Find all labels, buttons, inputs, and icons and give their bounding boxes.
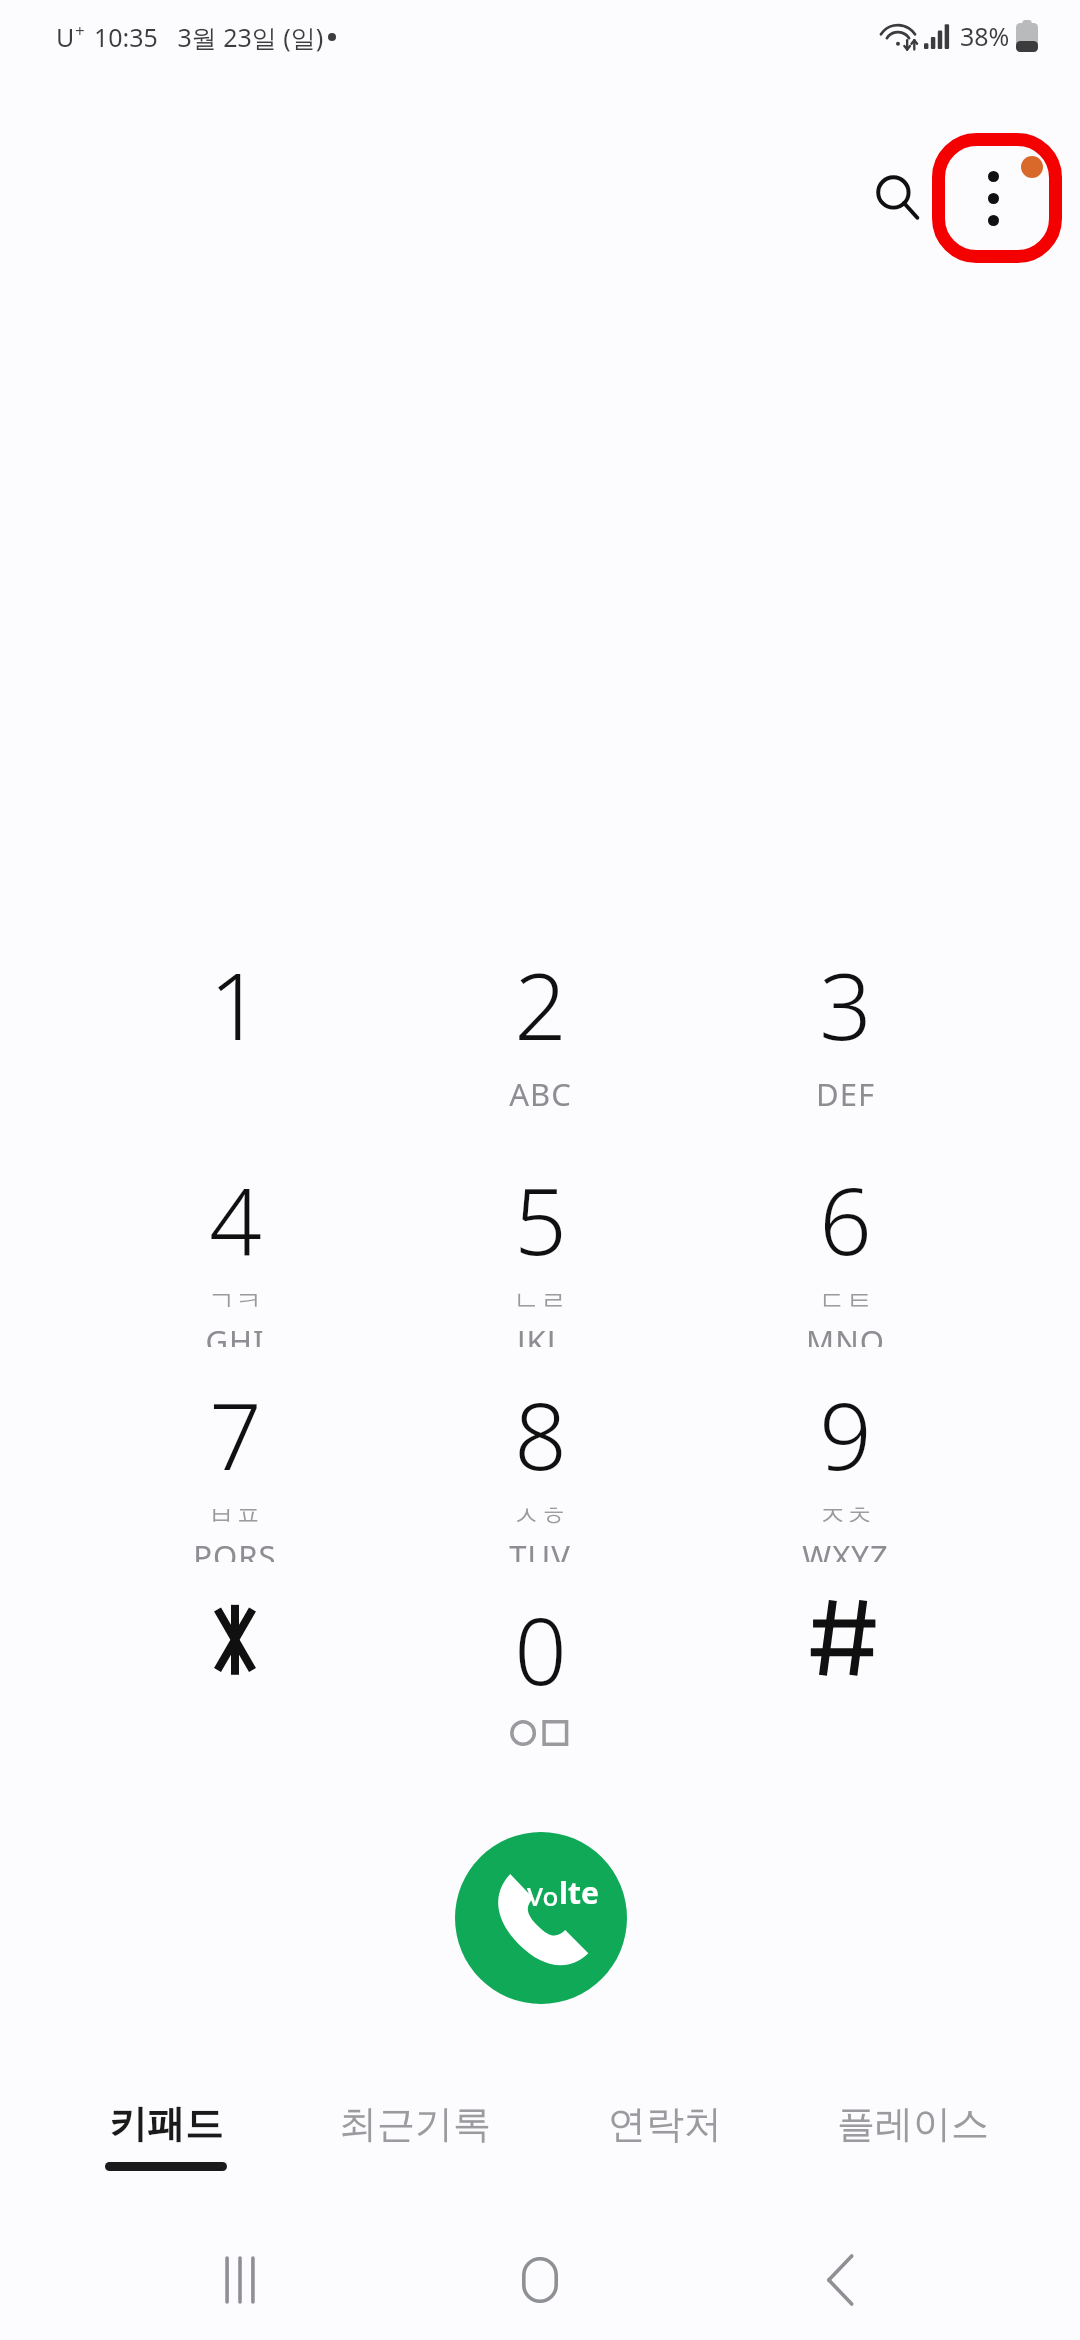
staticText: MNO bbox=[806, 1320, 885, 1347]
staticText: ABC bbox=[509, 1073, 572, 1115]
staticText: 키패드 bbox=[109, 2100, 223, 2148]
staticText: JKL bbox=[517, 1320, 564, 1347]
button[interactable]: 4 bbox=[85, 1157, 385, 1347]
button[interactable]: 5 bbox=[390, 1157, 690, 1347]
button[interactable]: Home bbox=[480, 2220, 600, 2340]
staticText: 플레이스 bbox=[837, 2100, 989, 2148]
button[interactable]: Recents bbox=[180, 2220, 300, 2340]
button[interactable]: 0 bbox=[390, 1587, 690, 1777]
staticText: GHI bbox=[205, 1320, 265, 1347]
button[interactable] bbox=[85, 1587, 385, 1777]
staticText: lte bbox=[559, 1872, 599, 1913]
staticText: 10:35 3월 23일 (일) bbox=[94, 20, 324, 54]
button[interactable]: 9 bbox=[695, 1372, 995, 1562]
button[interactable]: 6 bbox=[695, 1157, 995, 1347]
button[interactable]: 8 bbox=[390, 1372, 690, 1562]
staticText: ㅂㅍ bbox=[208, 1499, 262, 1533]
button[interactable]: 연락처 bbox=[540, 2082, 790, 2210]
button[interactable]: 3 bbox=[695, 942, 995, 1132]
staticText: 5 bbox=[514, 1157, 567, 1282]
button[interactable]: 키패드 bbox=[41, 2082, 291, 2210]
button[interactable]: More options bbox=[932, 133, 1062, 263]
button[interactable]: 1 bbox=[85, 942, 385, 1132]
staticText: 38% bbox=[960, 19, 1010, 53]
staticText: 4 bbox=[209, 1157, 262, 1282]
button[interactable]: 2 bbox=[390, 942, 690, 1132]
button[interactable]: Search bbox=[852, 152, 944, 244]
button[interactable]: 7 bbox=[85, 1372, 385, 1562]
staticText: DEF bbox=[816, 1073, 875, 1115]
staticText: WXYZ bbox=[802, 1535, 889, 1562]
staticText: TUV bbox=[509, 1535, 571, 1562]
button[interactable]: 플레이스 bbox=[788, 2082, 1038, 2210]
staticText: 7 bbox=[209, 1372, 262, 1497]
staticText: PQRS bbox=[193, 1535, 277, 1562]
button[interactable]: 최근기록 bbox=[290, 2082, 540, 2210]
button[interactable] bbox=[695, 1587, 995, 1777]
staticText: ㄱㅋ bbox=[208, 1284, 262, 1318]
button[interactable]: Back bbox=[780, 2220, 900, 2340]
staticText: 8 bbox=[514, 1372, 567, 1497]
staticText: 0 bbox=[514, 1587, 567, 1712]
staticText: U bbox=[56, 20, 75, 54]
staticText: + bbox=[75, 19, 85, 42]
staticText: 6 bbox=[819, 1157, 872, 1282]
staticText: 3 bbox=[819, 942, 872, 1067]
staticText: ㄴㄹ bbox=[513, 1284, 567, 1318]
staticText: 2 bbox=[514, 942, 567, 1067]
staticText: Vo bbox=[527, 1878, 559, 1913]
staticText: 1 bbox=[209, 942, 262, 1067]
staticText: 연락처 bbox=[608, 2100, 722, 2148]
staticText: 최근기록 bbox=[339, 2100, 491, 2148]
staticText: ㅅㅎ bbox=[513, 1499, 567, 1533]
button[interactable]: Call bbox=[455, 1832, 627, 2004]
staticText: 9 bbox=[819, 1372, 872, 1497]
staticText: ㅈㅊ bbox=[819, 1499, 873, 1533]
staticText: ㄷㅌ bbox=[819, 1284, 873, 1318]
